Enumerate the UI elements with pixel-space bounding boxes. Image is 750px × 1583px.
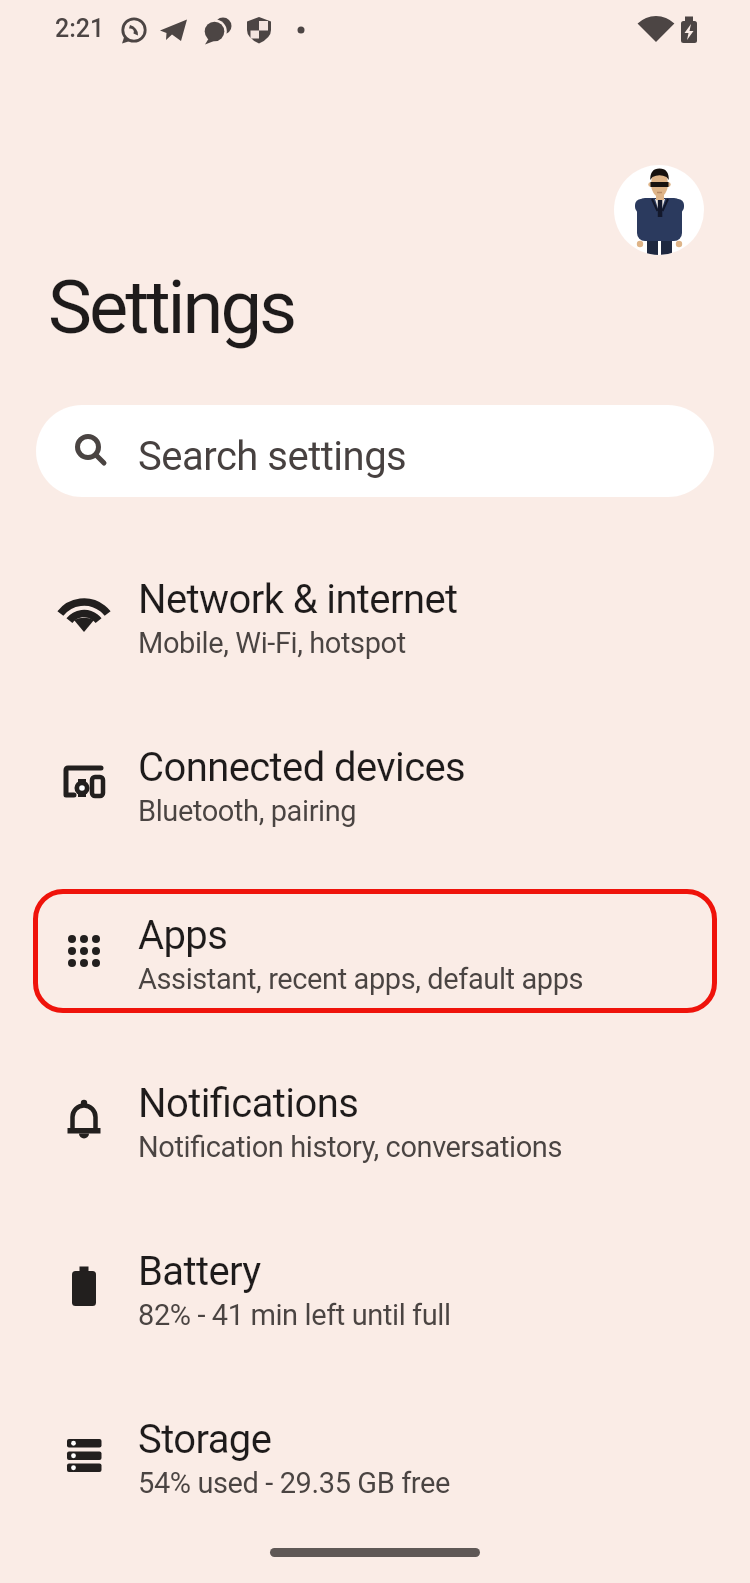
staticText: Bluetooth, pairing	[138, 794, 357, 828]
button[interactable]: Search settings	[36, 405, 714, 497]
button[interactable]: Storage	[0, 1371, 750, 1539]
button[interactable]	[614, 165, 704, 255]
button[interactable]: Connected devices	[0, 699, 750, 867]
staticText: Mobile, Wi-Fi, hotspot	[138, 626, 406, 660]
staticText: Storage	[138, 1416, 272, 1463]
staticText: Settings	[48, 264, 295, 351]
staticText: Connected devices	[138, 744, 466, 791]
staticText: 2:21	[55, 14, 105, 43]
staticText: 54% used - 29.35 GB free	[138, 1466, 450, 1500]
staticText: Network & internet	[138, 576, 458, 623]
staticText: Notification history, conversations	[138, 1130, 563, 1164]
staticText: Assistant, recent apps, default apps	[138, 962, 584, 996]
button[interactable]: Battery	[0, 1203, 750, 1371]
button[interactable]: Network & internet	[0, 531, 750, 699]
button[interactable]: Notifications	[0, 1035, 750, 1203]
staticText: Notifications	[138, 1080, 359, 1127]
staticText: Search settings	[138, 433, 407, 480]
staticText: 82% - 41 min left until full	[138, 1298, 451, 1332]
staticText: Apps	[138, 912, 228, 959]
staticText: Battery	[138, 1248, 261, 1295]
button[interactable]: Apps	[0, 867, 750, 1035]
